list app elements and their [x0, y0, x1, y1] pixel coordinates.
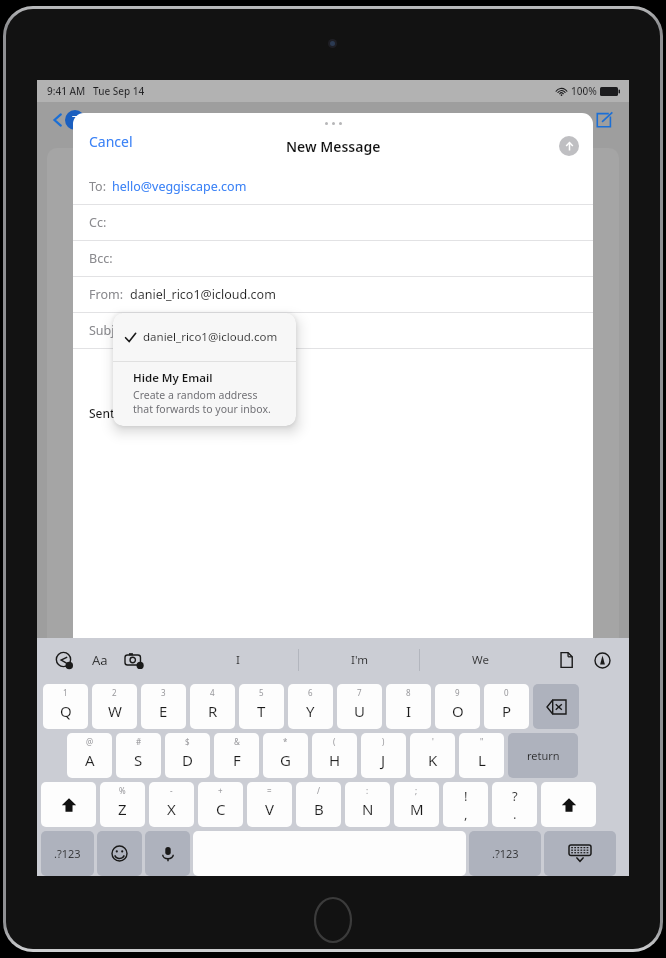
- staticText: 6: [308, 687, 313, 698]
- button[interactable]: Insert photo: [121, 647, 147, 673]
- button[interactable]: Drag handle: [325, 122, 342, 125]
- button[interactable]: Return: [508, 733, 578, 778]
- staticText: ?: [512, 787, 518, 805]
- staticText: F: [233, 750, 241, 770]
- staticText: 0: [504, 687, 509, 698]
- button[interactable]: %: [100, 782, 145, 827]
- staticText: 5: [259, 687, 264, 698]
- staticText: X: [167, 799, 176, 819]
- staticText: I: [406, 701, 412, 721]
- staticText: .?123: [54, 846, 81, 861]
- staticText: To:: [89, 178, 106, 195]
- staticText: I: [236, 652, 240, 668]
- button[interactable]: Delete: [503, 107, 529, 133]
- button[interactable]: ': [410, 733, 455, 778]
- button[interactable]: (: [312, 733, 357, 778]
- staticText: 8: [406, 687, 411, 698]
- button[interactable]: daniel_rico1@icloud.com: [125, 313, 296, 361]
- button[interactable]: ?: [492, 782, 537, 827]
- staticText: /: [317, 785, 320, 796]
- button[interactable]: Move to folder: [547, 107, 573, 133]
- staticText: 9:41 AM Tue Sep 14: [47, 84, 145, 98]
- staticText: daniel_rico1@icloud.com: [130, 286, 276, 303]
- button[interactable]: 5: [239, 684, 284, 729]
- staticText: 9: [455, 687, 460, 698]
- button[interactable]: Hide My Email: [133, 370, 296, 416]
- staticText: Cc:: [89, 214, 107, 231]
- staticText: J: [381, 750, 386, 770]
- button[interactable]: *: [263, 733, 308, 778]
- staticText: hello@veggiscape.com: [112, 178, 247, 195]
- button[interactable]: Backspace: [533, 684, 579, 729]
- staticText: 1: [63, 687, 68, 698]
- button[interactable]: Hide keyboard: [544, 831, 616, 876]
- button[interactable]: =: [247, 782, 292, 827]
- button[interactable]: 3: [141, 684, 186, 729]
- button[interactable]: Shift: [541, 782, 596, 827]
- button[interactable]: Send: [559, 136, 579, 156]
- button[interactable]: I: [178, 642, 298, 678]
- button[interactable]: Numbers: [469, 831, 541, 876]
- staticText: 3: [161, 687, 166, 698]
- staticText: Create a random address: [133, 388, 258, 402]
- button[interactable]: +: [198, 782, 243, 827]
- button[interactable]: ;: [394, 782, 439, 827]
- staticText: 7: [72, 113, 78, 127]
- button[interactable]: 7: [337, 684, 382, 729]
- button[interactable]: Documents: [553, 647, 579, 673]
- staticText: :: [366, 785, 369, 796]
- button[interactable]: -: [149, 782, 194, 827]
- button[interactable]: :: [345, 782, 390, 827]
- button[interactable]: Back: [45, 107, 71, 133]
- button[interactable]: Subject:: [73, 313, 593, 349]
- button[interactable]: Cc:: [73, 205, 593, 241]
- button[interactable]: Bcc:: [73, 241, 593, 277]
- button[interactable]: 4: [190, 684, 235, 729]
- button[interactable]: Markup: [589, 647, 615, 673]
- button[interactable]: 2: [92, 684, 137, 729]
- staticText: C: [216, 799, 226, 819]
- staticText: D: [182, 750, 193, 770]
- staticText: L: [478, 750, 486, 770]
- button[interactable]: ): [361, 733, 406, 778]
- button[interactable]: #: [116, 733, 161, 778]
- button[interactable]: Compose: [591, 107, 617, 133]
- button[interactable]: $: [165, 733, 210, 778]
- button[interactable]: &: [214, 733, 259, 778]
- button[interactable]: Cancel: [89, 132, 133, 151]
- button[interactable]: To:: [73, 169, 593, 205]
- button[interactable]: We: [420, 642, 540, 678]
- button[interactable]: 6: [288, 684, 333, 729]
- staticText: #: [136, 736, 142, 747]
- staticText: *: [283, 736, 288, 747]
- button[interactable]: 1: [43, 684, 88, 729]
- staticText: daniel_rico1@icloud.com: [143, 329, 278, 345]
- button[interactable]: Aa: [87, 647, 113, 673]
- staticText: ,: [464, 805, 468, 823]
- button[interactable]: /: [296, 782, 341, 827]
- staticText: O: [452, 701, 464, 721]
- staticText: ): [382, 736, 385, 747]
- staticText: M: [410, 799, 424, 819]
- button[interactable]: 8: [386, 684, 431, 729]
- button[interactable]: Shift: [41, 782, 96, 827]
- button[interactable]: 0: [484, 684, 529, 729]
- button[interactable]: @: [67, 733, 112, 778]
- button[interactable]: ": [459, 733, 504, 778]
- staticText: Aa: [92, 651, 108, 669]
- button[interactable]: Numbers: [41, 831, 94, 876]
- button[interactable]: !: [443, 782, 488, 827]
- button[interactable]: Unread count: [65, 110, 85, 130]
- button[interactable]: I'm: [299, 642, 419, 678]
- button[interactable]: 9: [435, 684, 480, 729]
- staticText: I'm: [351, 652, 368, 668]
- button[interactable]: From:: [73, 277, 593, 313]
- staticText: E: [159, 701, 168, 721]
- button[interactable]: Dictate: [145, 831, 190, 876]
- staticText: +: [218, 785, 223, 796]
- button[interactable]: Undo: [51, 647, 77, 673]
- staticText: New Message: [286, 137, 381, 156]
- button[interactable]: Emoji: [97, 831, 142, 876]
- staticText: $: [185, 736, 190, 747]
